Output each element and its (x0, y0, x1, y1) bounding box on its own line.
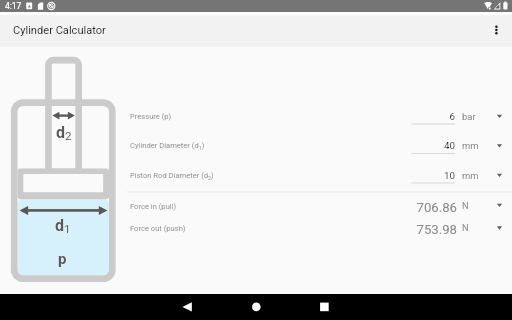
button[interactable]: Home (226, 294, 286, 320)
button[interactable]: Back (157, 294, 217, 320)
button[interactable]: Recent apps (294, 294, 354, 320)
staticText: 6 (409, 111, 455, 122)
button[interactable]: Piston Rod Diameter (d2) (126, 169, 512, 198)
button[interactable]: Force out (push) (126, 220, 512, 242)
staticText: Force in (pull) (130, 202, 177, 211)
staticText: 4:17 (5, 1, 22, 11)
button[interactable]: Force in (pull) (126, 198, 512, 220)
staticText: 706.86 (391, 200, 457, 215)
staticText: d1 (55, 216, 71, 236)
staticText: Pressure (p) (130, 112, 172, 121)
staticText: 10 (409, 170, 455, 181)
staticText: p (58, 250, 67, 268)
staticText: d2 (56, 123, 72, 143)
staticText: N (462, 200, 469, 211)
staticText: 40 (409, 140, 455, 151)
staticText: Cylinder Calculator (13, 24, 106, 37)
staticText: mm (462, 170, 479, 181)
staticText: Cylinder Diameter (d1) (130, 141, 205, 151)
staticText: bar (462, 111, 476, 122)
staticText: 753.98 (391, 222, 457, 237)
button[interactable]: More options (478, 15, 512, 47)
button[interactable]: Cylinder Diameter (d1) (126, 139, 512, 168)
staticText: Piston Rod Diameter (d2) (130, 171, 214, 181)
button[interactable]: Pressure (p) (126, 110, 512, 139)
staticText: Force out (push) (130, 224, 186, 233)
staticText: N (462, 222, 469, 233)
staticText: mm (462, 140, 479, 151)
